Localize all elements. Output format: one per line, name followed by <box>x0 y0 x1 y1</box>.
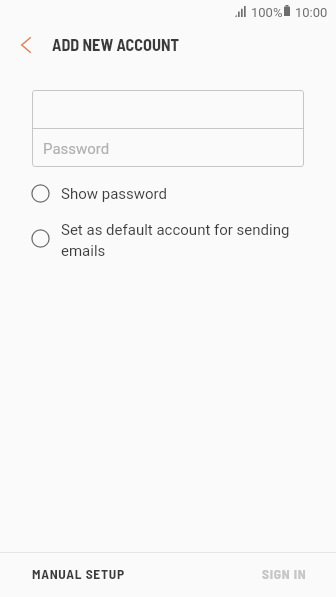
staticText: ADD NEW ACCOUNT <box>52 35 180 55</box>
button[interactable]: Back <box>0 22 46 66</box>
button[interactable]: Password <box>32 128 304 166</box>
button[interactable]: Show password <box>0 176 336 211</box>
button[interactable]: SIGN IN <box>168 553 336 597</box>
staticText: MANUAL SETUP <box>32 565 125 581</box>
staticText: Set as default account for sending email… <box>61 221 298 259</box>
staticText: SIGN IN <box>262 565 307 581</box>
staticText: 10:00 <box>295 5 328 20</box>
button[interactable] <box>32 90 304 128</box>
staticText: Password <box>43 140 110 158</box>
button[interactable]: MANUAL SETUP <box>0 553 168 597</box>
staticText: Show password <box>61 185 168 203</box>
staticText: 100% <box>251 5 283 20</box>
button[interactable]: Set as default account for sending email… <box>0 211 336 265</box>
